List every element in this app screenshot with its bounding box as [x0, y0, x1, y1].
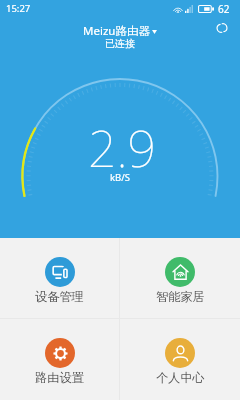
staticText: 已连接 — [105, 37, 135, 50]
staticText: 15:27 — [6, 2, 31, 15]
button[interactable]: Refresh — [209, 15, 235, 41]
staticText: 智能家居 — [156, 289, 205, 304]
button[interactable]: 个人中心 — [120, 319, 240, 400]
staticText: 设备管理 — [35, 289, 84, 304]
staticText: 2.9 — [88, 114, 156, 182]
staticText: 路由设置 — [35, 370, 84, 385]
staticText: 个人中心 — [156, 370, 205, 385]
button[interactable]: 设备管理 — [0, 238, 119, 318]
button[interactable]: 路由设置 — [0, 319, 119, 400]
staticText: Meizu路由器 — [83, 23, 150, 39]
staticText: kB/S — [110, 171, 130, 184]
button[interactable]: 智能家居 — [120, 238, 240, 318]
staticText: 62 — [218, 2, 230, 16]
